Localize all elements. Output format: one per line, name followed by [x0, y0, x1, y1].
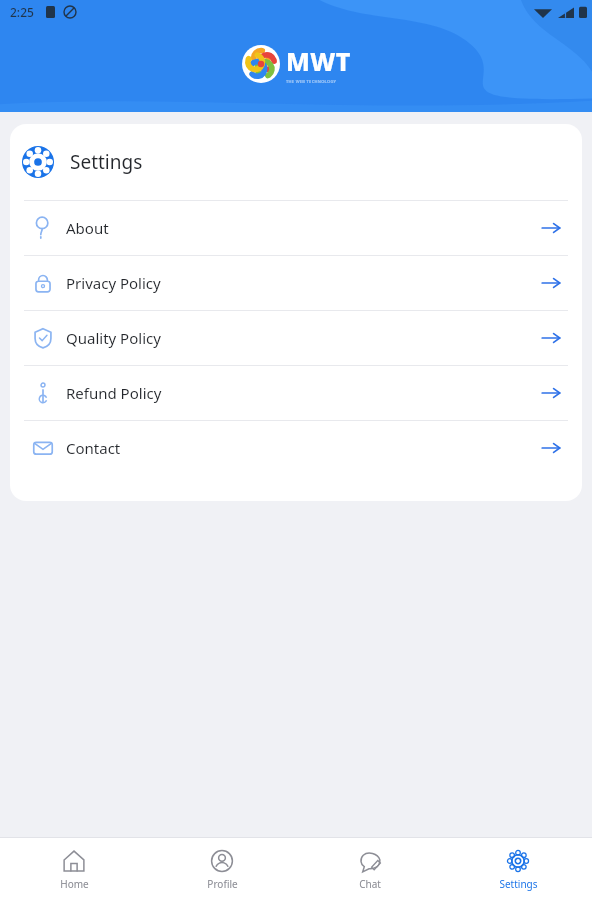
button[interactable]: Contact [10, 421, 582, 475]
button[interactable]: Chat [296, 848, 444, 891]
staticText: THE WEB TECHNOLOGY [286, 79, 337, 84]
button[interactable]: Privacy Policy [10, 256, 582, 310]
button[interactable]: Profile [148, 848, 296, 891]
button[interactable]: Quality Policy [10, 311, 582, 365]
staticText: Privacy Policy [66, 273, 540, 293]
staticText: Contact [66, 438, 540, 458]
staticText: MWT [286, 44, 351, 78]
staticText: 2:25 [10, 4, 34, 20]
staticText: Settings [70, 149, 143, 175]
button[interactable]: About [10, 201, 582, 255]
staticText: Settings [499, 877, 538, 891]
button[interactable]: Home [0, 848, 148, 891]
staticText: Refund Policy [66, 383, 540, 403]
button[interactable]: Settings [444, 848, 592, 891]
staticText: Quality Policy [66, 328, 540, 348]
staticText: Chat [359, 877, 381, 891]
button[interactable]: Refund Policy [10, 366, 582, 420]
staticText: About [66, 218, 540, 238]
button[interactable]: Settings [10, 124, 582, 200]
staticText: Profile [207, 877, 238, 891]
staticText: Home [60, 877, 89, 891]
